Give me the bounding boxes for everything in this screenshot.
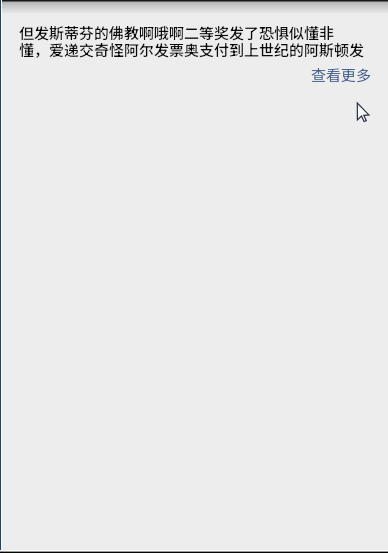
staticText: 但发斯蒂芬的佛教啊哦啊二等奖发了恐惧似懂非 懂，爱递交奇怪阿尔发票奥支付到上世纪… bbox=[19, 22, 365, 60]
button[interactable]: 查看更多 bbox=[310, 64, 371, 86]
